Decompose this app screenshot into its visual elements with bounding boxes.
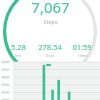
- button[interactable]: 5.28: [3, 42, 33, 58]
- staticText: 7,067: [31, 0, 70, 17]
- button[interactable]: 01:59: [67, 42, 97, 58]
- button[interactable]: Activity chart: [0, 60, 100, 100]
- button[interactable]: Step goal progress: [0, 0, 100, 56]
- staticText: 01:59: [72, 42, 92, 52]
- staticText: kcal: [46, 53, 54, 58]
- staticText: 278.54: [38, 42, 62, 52]
- staticText: Steps: [43, 18, 58, 25]
- button[interactable]: 278.54: [33, 42, 67, 58]
- staticText: 5.28: [11, 42, 26, 52]
- staticText: km: [15, 53, 21, 58]
- button[interactable]: 7,067: [31, 0, 70, 25]
- staticText: time: [78, 53, 87, 58]
